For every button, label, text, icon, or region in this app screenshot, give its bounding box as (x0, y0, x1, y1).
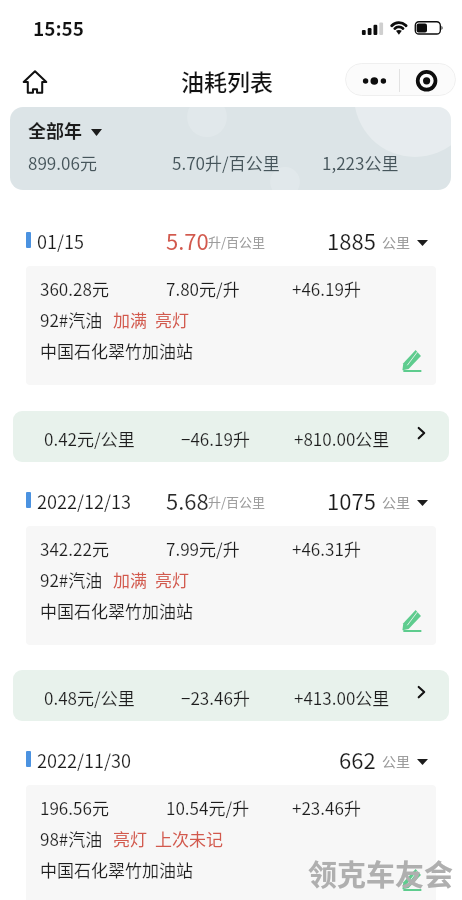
staticText: 342.22元 (40, 536, 109, 561)
staticText: +46.19升 (292, 276, 361, 301)
button[interactable]: 全部年 (10, 107, 451, 190)
staticText: 01/15 (37, 228, 85, 254)
button[interactable]: 01/15 (12, 212, 450, 399)
button[interactable]: Edit (395, 342, 431, 378)
staticText: +810.00公里 (294, 426, 390, 451)
staticText: 5.68 (166, 484, 209, 516)
button[interactable]: 2022/11/30 (12, 731, 450, 900)
button[interactable]: Edit (395, 861, 431, 897)
staticText: 亮灯 (155, 307, 189, 332)
staticText: 7.80元/升 (166, 276, 240, 301)
staticText: 中国石化翠竹加油站 (40, 338, 193, 363)
staticText: +413.00公里 (294, 685, 390, 710)
staticText: −46.19升 (181, 426, 250, 451)
staticText: 2022/12/13 (37, 488, 132, 514)
staticText: 1885 (327, 224, 376, 254)
staticText: 92#汽油 (40, 307, 103, 332)
staticText: 92#汽油 (40, 567, 103, 592)
staticText: 加满 (113, 567, 147, 592)
staticText: +23.46升 (292, 795, 361, 820)
staticText: 98#汽油 (40, 826, 103, 851)
staticText: 中国石化翠竹加油站 (40, 598, 193, 623)
staticText: 亮灯 (155, 567, 189, 592)
staticText: 升/百公里 (208, 232, 266, 251)
button[interactable]: Target (400, 63, 456, 96)
staticText: 662 (339, 743, 376, 773)
staticText: 5.70升/百公里 (172, 150, 280, 175)
staticText: 油耗列表 (181, 64, 273, 97)
button[interactable]: More (345, 63, 399, 96)
staticText: 1,223公里 (322, 150, 399, 175)
staticText: 2022/11/30 (37, 747, 132, 773)
staticText: 中国石化翠竹加油站 (40, 857, 193, 882)
staticText: 升/百公里 (208, 492, 266, 511)
button[interactable]: Home (17, 64, 53, 100)
staticText: 加满 (113, 307, 147, 332)
staticText: 公里 (382, 232, 410, 252)
staticText: 领克车友会 (308, 852, 454, 894)
staticText: +46.31升 (292, 536, 361, 561)
staticText: 全部年 (28, 117, 82, 143)
button[interactable]: 0.48元/公里 (13, 670, 449, 721)
button[interactable]: 0.42元/公里 (13, 411, 449, 462)
staticText: 360.28元 (40, 276, 109, 301)
staticText: 1075 (327, 484, 376, 514)
staticText: 亮灯 (113, 826, 147, 851)
button[interactable]: 2022/12/13 (12, 472, 450, 659)
staticText: 0.42元/公里 (44, 426, 135, 451)
staticText: 5.70 (166, 224, 209, 256)
staticText: 0.48元/公里 (44, 685, 135, 710)
staticText: 7.99元/升 (166, 536, 240, 561)
staticText: 公里 (382, 492, 410, 512)
staticText: 10.54元/升 (166, 795, 250, 820)
staticText: 公里 (382, 751, 410, 771)
staticText: −23.46升 (181, 685, 250, 710)
button[interactable]: Edit (395, 602, 431, 638)
staticText: 899.06元 (28, 150, 97, 175)
staticText: 15:55 (33, 14, 85, 42)
staticText: 上次未记 (155, 826, 223, 851)
staticText: 196.56元 (40, 795, 109, 820)
